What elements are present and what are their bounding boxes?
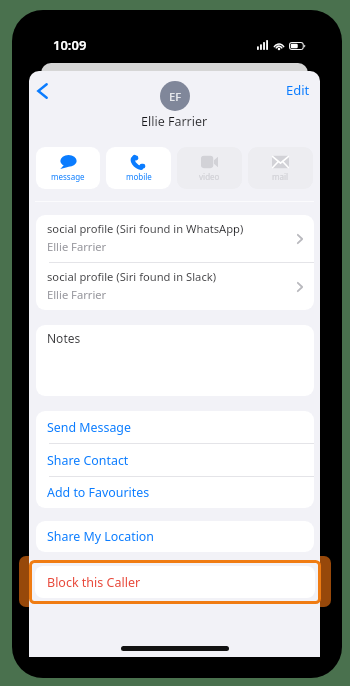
button[interactable]: Edit [281, 80, 315, 100]
button[interactable]: Add to Favourites [36, 477, 314, 508]
staticText: message [51, 171, 85, 182]
button[interactable]: Send Message [36, 411, 314, 443]
button[interactable]: Notes [36, 325, 314, 396]
button[interactable]: Share My Location [36, 521, 314, 552]
button[interactable]: mobile [106, 147, 171, 189]
button[interactable]: social profile (Siri found in Slack) [36, 263, 314, 310]
staticText: Ellie Farrier [47, 239, 107, 254]
button[interactable]: social profile (Siri found in WhatsApp) [36, 215, 314, 262]
button[interactable]: mail [248, 147, 313, 189]
button[interactable]: Block this Caller [36, 566, 315, 598]
staticText: Ellie Farrier [141, 113, 208, 130]
staticText: 10:09 [53, 36, 87, 54]
staticText: Edit [286, 81, 310, 99]
staticText: Share Contact [47, 452, 129, 469]
staticText: Add to Favourites [47, 484, 150, 501]
staticText: Share My Location [47, 528, 154, 545]
staticText: social profile (Siri found in Slack) [47, 269, 217, 284]
staticText: EF [169, 89, 181, 104]
button[interactable]: video [177, 147, 242, 189]
staticText: social profile (Siri found in WhatsApp) [47, 221, 244, 236]
staticText: video [199, 171, 220, 182]
staticText: mail [272, 171, 289, 182]
button[interactable]: message [36, 147, 100, 189]
button[interactable]: Share Contact [36, 444, 314, 476]
staticText: Block this Caller [47, 574, 141, 591]
staticText: Send Message [47, 419, 131, 436]
staticText: mobile [126, 171, 152, 182]
staticText: Ellie Farrier [47, 287, 107, 302]
staticText: Notes [47, 330, 81, 346]
button[interactable]: Back [29, 77, 59, 105]
